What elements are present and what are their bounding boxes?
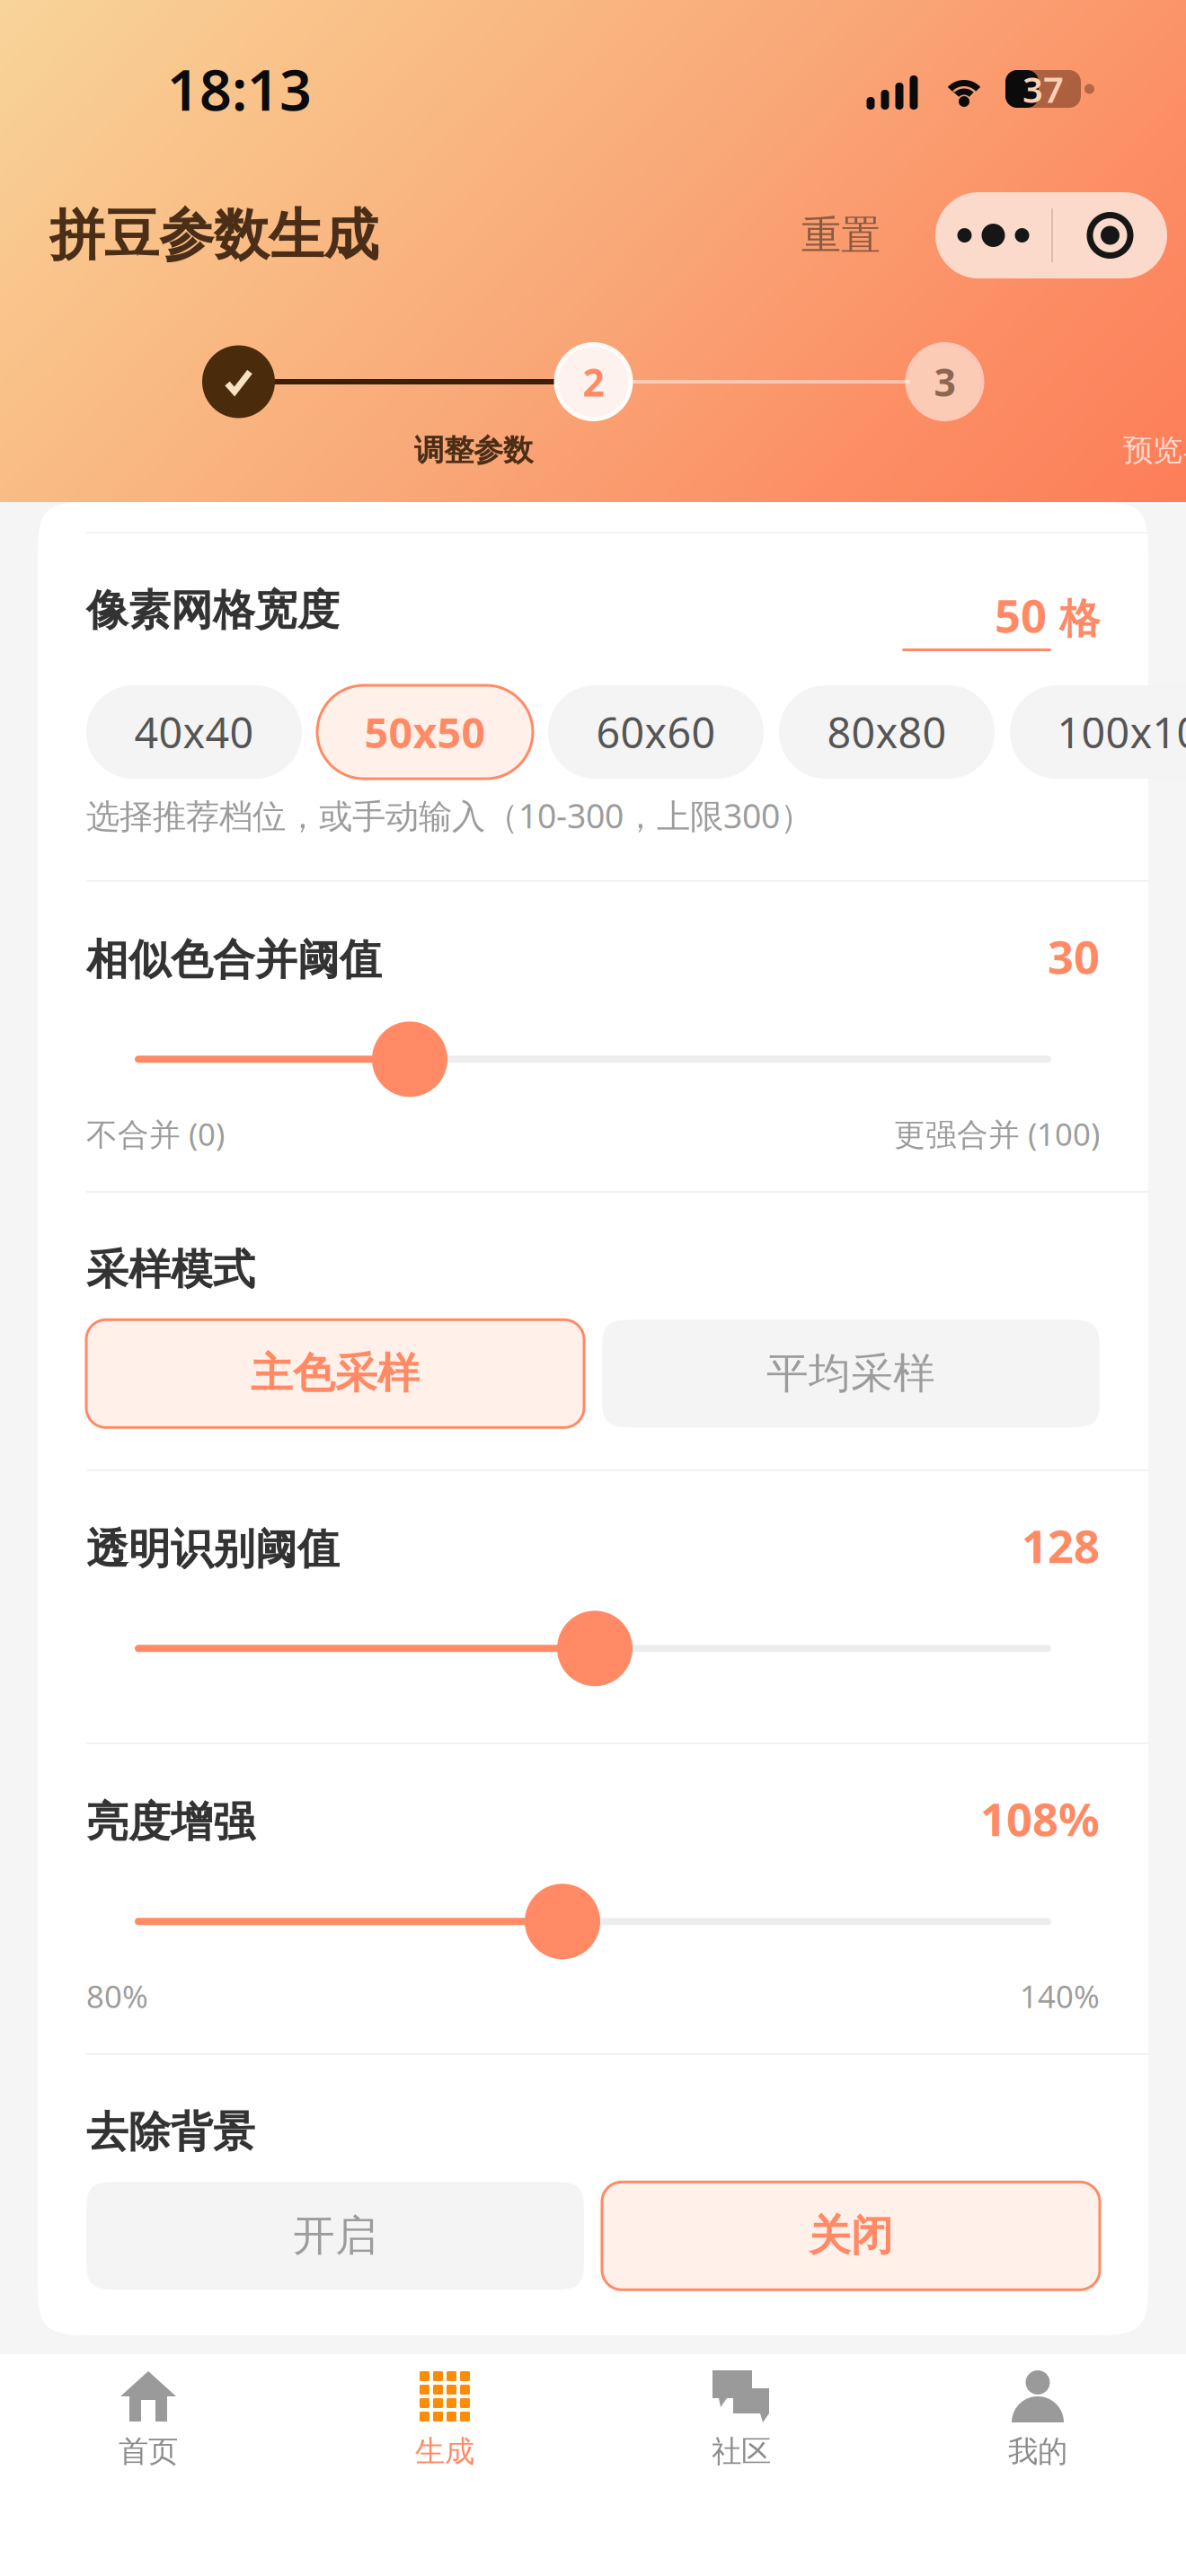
staticText: 采样模式 (86, 1244, 255, 1295)
staticText: 调整参数 (414, 432, 533, 469)
staticText: 预览导出 (1123, 432, 1186, 469)
staticText: 开启 (293, 2210, 377, 2262)
button[interactable]: 平均采样 (602, 1320, 1100, 1427)
button[interactable]: 40x40 (86, 685, 302, 779)
button[interactable]: 主色采样 (86, 1320, 584, 1427)
staticText: 50x50 (364, 704, 486, 760)
staticText: 生成 (415, 2433, 474, 2470)
button[interactable]: 开启 (86, 2182, 584, 2290)
staticText: 平均采样 (766, 1348, 935, 1399)
staticText: 亮度增强 (86, 1796, 255, 1848)
button[interactable]: 关闭 (602, 2182, 1100, 2290)
staticText: 透明识别阈值 (86, 1523, 340, 1575)
staticText: 80% (86, 1975, 148, 2017)
staticText: 关闭 (809, 2210, 893, 2262)
staticText: 128 (1022, 1515, 1100, 1576)
staticText: 主色采样 (251, 1348, 420, 1399)
staticText: 40x40 (134, 704, 254, 760)
button[interactable]: 100x100 (1010, 685, 1186, 779)
staticText: 60x60 (596, 704, 716, 760)
button[interactable]: 首页 (0, 2354, 296, 2493)
button[interactable]: Menu and close (935, 192, 1167, 278)
button[interactable]: 重置 (783, 197, 898, 274)
staticText: 30 (1048, 926, 1100, 986)
staticText: 100x100 (1057, 704, 1186, 760)
staticText: 108% (980, 1788, 1100, 1849)
button[interactable]: 社区 (593, 2354, 889, 2493)
button[interactable]: 生成 (296, 2354, 593, 2493)
staticText: 像素网格宽度 (86, 585, 340, 636)
staticText: 首页 (119, 2433, 178, 2470)
button[interactable]: 60x60 (548, 685, 764, 779)
staticText: 80x80 (827, 704, 947, 760)
button[interactable]: 80x80 (779, 685, 995, 779)
staticText: 50 (995, 585, 1047, 645)
staticText: 不合并 (0) (86, 1113, 225, 1154)
staticText: 社区 (712, 2433, 771, 2470)
staticText: 去除背景 (86, 2106, 255, 2158)
staticText: 格 (1059, 594, 1100, 644)
staticText: 重置 (801, 211, 881, 260)
staticText: 3 (934, 356, 956, 407)
staticText: 拼豆参数生成 (49, 201, 378, 269)
staticText: 我的 (1008, 2433, 1067, 2470)
staticText: 相似色合并阈值 (86, 934, 382, 986)
staticText: 选择推荐档位，或手动输入（10-300，上限300） (86, 793, 813, 838)
button[interactable]: 我的 (889, 2354, 1186, 2493)
staticText: 140% (1020, 1975, 1100, 2017)
staticText: 更强合并 (100) (894, 1113, 1100, 1154)
staticText: 18:13 (167, 52, 312, 126)
staticText: 37 (1022, 65, 1064, 113)
button[interactable]: 50x50 (317, 685, 533, 779)
staticText: 2 (583, 356, 604, 407)
